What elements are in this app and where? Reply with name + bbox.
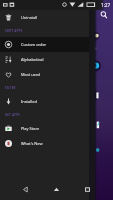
button[interactable]: Installed bbox=[0, 94, 89, 109]
staticText: What's New bbox=[21, 141, 43, 146]
button[interactable]: What's New bbox=[0, 136, 89, 151]
button[interactable]: Uninstall bbox=[0, 10, 89, 25]
staticText: Play Store bbox=[21, 126, 40, 131]
button[interactable]: Alphabetical bbox=[0, 52, 89, 67]
staticText: Custom order bbox=[21, 42, 47, 47]
button[interactable]: Most used bbox=[0, 67, 89, 82]
button[interactable]: Play Store bbox=[0, 121, 89, 136]
staticText: SORT APPS bbox=[5, 29, 23, 33]
button[interactable]: Home bbox=[49, 182, 63, 196]
button[interactable]: Custom order bbox=[0, 37, 89, 52]
staticText: Installed bbox=[21, 99, 37, 104]
staticText: Alphabetical bbox=[21, 57, 44, 62]
staticText: FILTER bbox=[5, 86, 16, 90]
button[interactable]: Recents bbox=[80, 182, 94, 196]
button[interactable]: Back bbox=[18, 182, 32, 196]
staticText: 1:27 bbox=[101, 2, 111, 8]
staticText: Uninstall bbox=[21, 15, 38, 20]
button[interactable]: Search bbox=[98, 9, 109, 20]
staticText: GET APPS bbox=[5, 113, 20, 117]
staticText: Most used bbox=[21, 72, 41, 77]
